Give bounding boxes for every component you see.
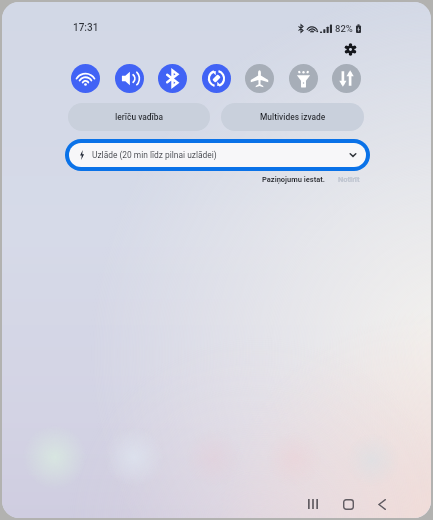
staticText: Ierīču vadība xyxy=(115,112,164,122)
button[interactable]: Wi-Fi xyxy=(71,64,100,93)
button[interactable]: Flashlight xyxy=(289,64,318,93)
button[interactable]: Airplane mode xyxy=(245,64,274,93)
button[interactable]: Bluetooth xyxy=(158,64,187,93)
staticText: Uzlāde (20 min līdz pilnai uzlādei) xyxy=(92,150,217,160)
staticText: Paziņojumu iestat. xyxy=(262,175,325,184)
button[interactable]: Sound xyxy=(115,64,144,93)
button[interactable]: Settings xyxy=(344,43,357,56)
button[interactable]: Uzlāde (20 min līdz pilnai uzlādei) xyxy=(69,143,366,167)
button[interactable]: Notīrīt xyxy=(336,172,362,187)
staticText: 82% xyxy=(335,23,353,34)
staticText: Multivides izvade xyxy=(260,112,326,122)
button[interactable]: Ierīču vadība xyxy=(68,103,210,131)
button[interactable]: Mobile data xyxy=(332,64,361,93)
staticText: Notīrīt xyxy=(338,175,360,184)
button[interactable]: Recents xyxy=(297,491,329,517)
staticText: 17:31 xyxy=(73,22,99,34)
button[interactable]: Multivides izvade xyxy=(221,103,364,131)
button[interactable]: Paziņojumu iestat. xyxy=(260,172,327,187)
button[interactable]: Home xyxy=(332,491,364,517)
button[interactable]: Auto rotate xyxy=(202,64,231,93)
button[interactable]: Back xyxy=(366,491,398,517)
